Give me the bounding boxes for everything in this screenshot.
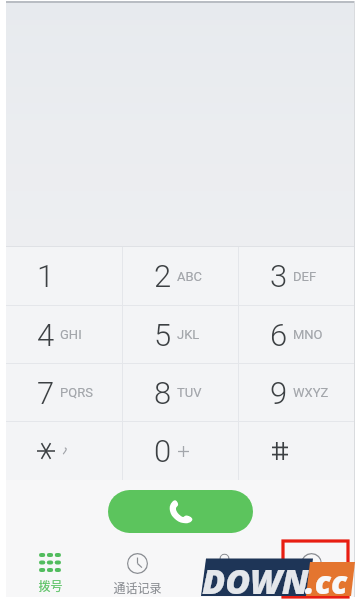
staticText: PQRS: [60, 385, 93, 400]
staticText: 4: [37, 317, 55, 353]
staticText: 3: [270, 258, 288, 294]
button[interactable]: 5: [123, 306, 239, 363]
staticText: 收藏: [299, 579, 324, 596]
staticText: 拨号: [38, 577, 63, 594]
button[interactable]: 4: [6, 306, 123, 363]
button[interactable]: 7: [6, 364, 123, 421]
button[interactable]: 通话记录: [94, 543, 181, 597]
button[interactable]: 3: [239, 247, 355, 305]
staticText: JKL: [177, 327, 200, 342]
button[interactable]: 2: [123, 247, 239, 305]
button[interactable]: Call: [108, 490, 253, 533]
staticText: 8: [154, 375, 172, 411]
staticText: 6: [270, 317, 288, 353]
staticText: 5: [154, 317, 172, 353]
staticText: 联系人: [206, 579, 243, 596]
staticText: 7: [37, 375, 55, 411]
staticText: 9: [270, 375, 288, 411]
staticText: TUV: [177, 385, 202, 400]
button[interactable]: 拨号: [6, 543, 94, 597]
staticText: .cc: [305, 560, 348, 602]
staticText: 通话记录: [113, 579, 162, 596]
button[interactable]: 0: [123, 422, 239, 480]
button[interactable]: 1: [6, 247, 123, 305]
staticText: 1: [37, 258, 55, 294]
button[interactable]: 6: [239, 306, 355, 363]
staticText: WXYZ: [293, 385, 329, 400]
staticText: DOWN: [202, 558, 309, 602]
button[interactable]: 联系人: [181, 543, 268, 597]
button[interactable]: [6, 422, 123, 480]
staticText: 2: [154, 258, 172, 294]
button[interactable]: 9: [239, 364, 355, 421]
staticText: MNO: [293, 327, 323, 342]
staticText: 0: [154, 433, 172, 469]
staticText: GHI: [60, 327, 82, 342]
button[interactable]: 8: [123, 364, 239, 421]
staticText: DEF: [293, 269, 317, 284]
staticText: ABC: [177, 269, 203, 284]
button[interactable]: 收藏: [268, 543, 355, 597]
button[interactable]: [239, 422, 355, 480]
